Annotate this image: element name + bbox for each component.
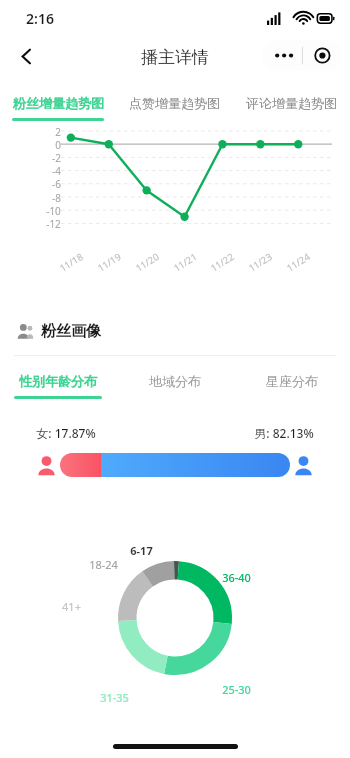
button[interactable]: 点赞增量趋势图 xyxy=(116,84,233,122)
staticText: 播主详情 xyxy=(141,47,209,68)
staticText: 性别年龄分布 xyxy=(19,373,97,389)
staticText: 女: 17.87% xyxy=(36,425,96,441)
staticText: 评论增量趋势图 xyxy=(246,95,337,111)
staticText: 11/21 xyxy=(171,250,200,275)
staticText: 6-17 xyxy=(130,543,153,558)
staticText: -2 xyxy=(52,151,61,165)
staticText: -12 xyxy=(46,217,61,231)
staticText: 男: 82.13% xyxy=(254,425,314,441)
button[interactable]: 地域分布 xyxy=(116,363,233,399)
staticText: -10 xyxy=(46,204,61,218)
staticText: 18-24 xyxy=(89,557,118,572)
staticText: 11/22 xyxy=(208,250,237,275)
staticText: 36-40 xyxy=(222,570,251,585)
staticText: -6 xyxy=(52,177,61,191)
staticText: 2:16 xyxy=(26,9,54,28)
staticText: -4 xyxy=(52,164,61,178)
staticText: -8 xyxy=(52,191,61,205)
staticText: 星座分布 xyxy=(266,373,318,389)
staticText: 11/23 xyxy=(246,250,275,275)
staticText: 粉丝增量趋势图 xyxy=(13,95,104,111)
staticText: 11/19 xyxy=(95,250,124,275)
staticText: 地域分布 xyxy=(149,373,201,389)
button[interactable]: 性别年龄分布 xyxy=(0,363,116,399)
button[interactable]: Back xyxy=(6,36,46,76)
button[interactable]: 评论增量趋势图 xyxy=(233,84,350,122)
staticText: 25-30 xyxy=(222,682,251,697)
staticText: 粉丝画像 xyxy=(41,322,101,341)
staticText: 0 xyxy=(55,138,61,152)
button[interactable]: 粉丝增量趋势图 xyxy=(0,84,116,122)
staticText: 31-35 xyxy=(100,690,129,705)
staticText: 11/18 xyxy=(57,250,86,275)
staticText: 41+ xyxy=(62,599,81,614)
button[interactable]: 星座分布 xyxy=(233,363,350,399)
button[interactable]: More options xyxy=(262,40,342,71)
staticText: 点赞增量趋势图 xyxy=(129,95,220,111)
staticText: 11/24 xyxy=(284,250,313,275)
staticText: 11/20 xyxy=(133,250,162,275)
staticText: 2 xyxy=(55,125,61,139)
